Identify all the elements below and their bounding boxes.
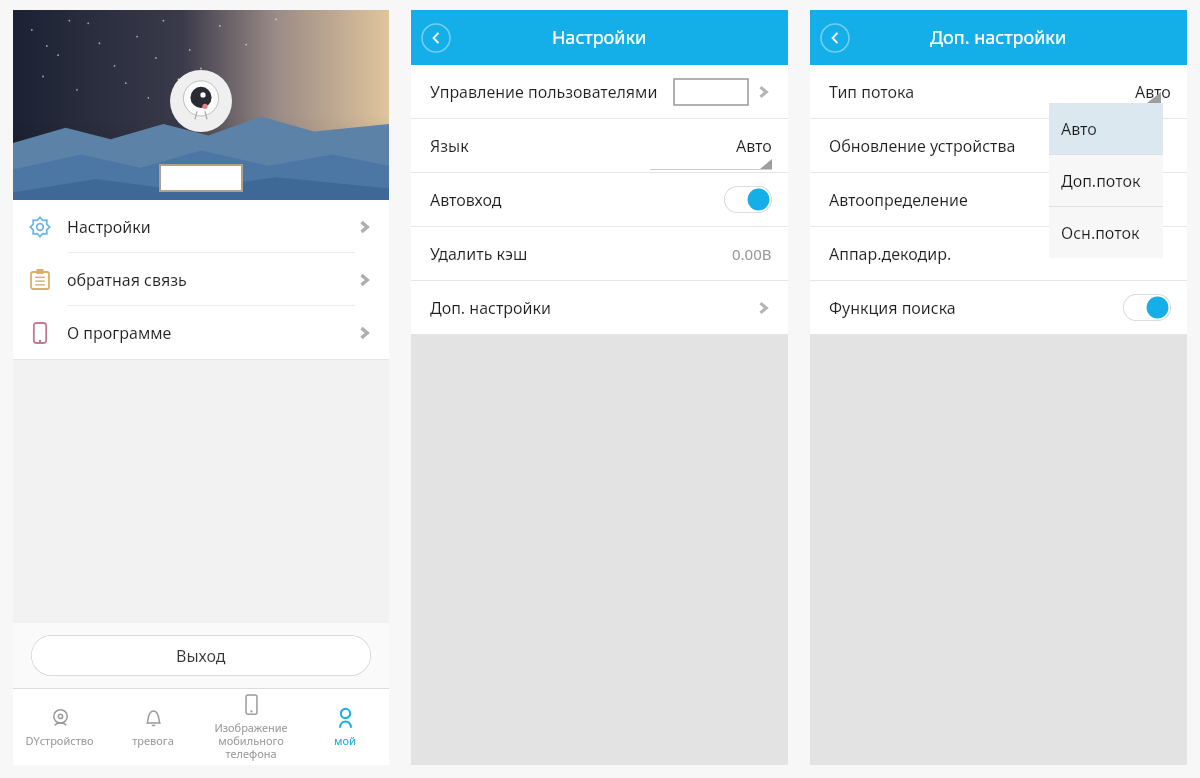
staticText: Настройки [552,25,647,50]
button[interactable]: DYстройство [13,689,106,765]
staticText: Управление пользователями [430,81,658,103]
button[interactable]: Язык [411,119,788,172]
staticText: О программе [67,322,172,344]
staticText: Доп. настройки [430,297,551,319]
button[interactable]: Доп. настройки [411,281,788,335]
button[interactable]: Автоопределение [810,173,1187,227]
staticText: Удалить кэш [430,243,528,265]
button[interactable]: Изображение мобильного телефона [199,689,302,765]
staticText: Доп.поток [1061,170,1141,192]
button[interactable]: Выход [31,635,371,676]
staticText: Авто [1135,81,1171,103]
staticText: Настройки [67,216,151,238]
button[interactable]: Аппар.декодир. [810,227,1187,281]
button[interactable]: Управление пользователями [411,65,788,119]
staticText: Функция поиска [829,297,956,319]
staticText: обратная связь [67,269,187,291]
button[interactable]: Авто [1049,103,1163,154]
button[interactable]: О программе [13,306,389,359]
staticText: Выход [176,645,226,667]
button[interactable] [1123,294,1171,321]
staticText: мой [334,733,356,748]
button[interactable]: Настройки [13,200,389,253]
staticText: Изображение мобильного телефона [214,720,288,761]
button[interactable]: Тип потока [810,65,1187,118]
button[interactable]: Back [818,21,852,55]
button[interactable]: обратная связь [13,253,389,306]
button[interactable]: Осн.поток [1049,207,1163,258]
button[interactable] [724,186,772,213]
staticText: Осн.поток [1061,222,1140,244]
button[interactable]: Доп.поток [1049,155,1163,206]
staticText: DYстройство [25,733,94,748]
button[interactable]: Avatar [170,70,232,132]
button[interactable]: Удалить кэш [411,227,788,281]
staticText: Автоопределение [829,189,968,211]
staticText: Авто [1061,118,1097,140]
button[interactable]: Обновление устройства [810,119,1187,173]
staticText: Тип потока [829,81,915,103]
button[interactable]: Автовход [411,173,788,227]
button[interactable]: Back [419,21,453,55]
staticText: Аппар.декодир. [829,243,952,265]
staticText: 0.00B [732,244,772,264]
button[interactable]: мой [302,689,387,765]
button[interactable]: тревога [106,689,199,765]
staticText: Авто [736,135,772,157]
staticText: Язык [430,135,469,157]
staticText: Автовход [430,189,502,211]
staticText: тревога [132,733,174,748]
staticText: Доп. настройки [930,25,1067,50]
button[interactable]: Функция поиска [810,281,1187,334]
staticText: Обновление устройства [829,135,1016,157]
